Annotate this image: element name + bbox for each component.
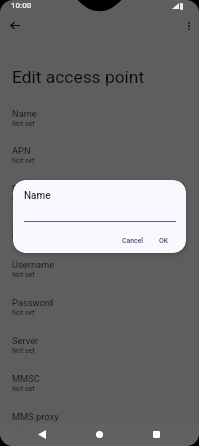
staticText: Server <box>12 335 39 346</box>
button[interactable]: Back <box>31 424 53 446</box>
staticText: Not set <box>12 195 35 203</box>
button[interactable]: Home <box>88 424 110 446</box>
button[interactable]: Password <box>0 293 199 331</box>
staticText: Not set <box>12 347 35 355</box>
button[interactable]: APN <box>0 141 199 179</box>
staticText: MMSC <box>12 373 40 384</box>
button[interactable]: MMSC <box>0 369 199 407</box>
staticText: Cancel <box>122 237 144 245</box>
staticText: Name <box>12 108 37 119</box>
staticText: Name <box>24 190 51 202</box>
button[interactable]: Recent apps <box>145 424 167 446</box>
button[interactable]: Navigate up <box>2 13 27 38</box>
staticText: APN <box>12 145 31 156</box>
staticText: Proxy <box>12 183 36 194</box>
button[interactable]: Cancel <box>119 233 146 248</box>
staticText: Not set <box>12 309 35 317</box>
staticText: Not set <box>12 385 35 393</box>
button[interactable]: Proxy <box>0 179 199 217</box>
staticText: Port <box>12 221 30 232</box>
button[interactable]: OK <box>151 233 176 248</box>
staticText: Username <box>12 259 55 270</box>
staticText: Password <box>12 297 54 308</box>
staticText: Edit access point <box>12 67 145 87</box>
staticText: OK <box>159 237 169 245</box>
staticText: 10:00 <box>11 1 32 10</box>
button[interactable]: Username <box>0 255 199 293</box>
staticText: Not set <box>12 233 35 241</box>
button[interactable]: Port <box>0 217 199 255</box>
staticText: Not set <box>12 120 35 128</box>
staticText: MMS proxy <box>12 411 59 422</box>
button[interactable]: Name <box>0 104 199 142</box>
button[interactable]: Server <box>0 331 199 369</box>
button[interactable]: More options <box>176 13 199 38</box>
staticText: Not set <box>12 157 35 165</box>
staticText: Not set <box>12 271 35 279</box>
button[interactable]: MMS proxy <box>0 407 199 445</box>
